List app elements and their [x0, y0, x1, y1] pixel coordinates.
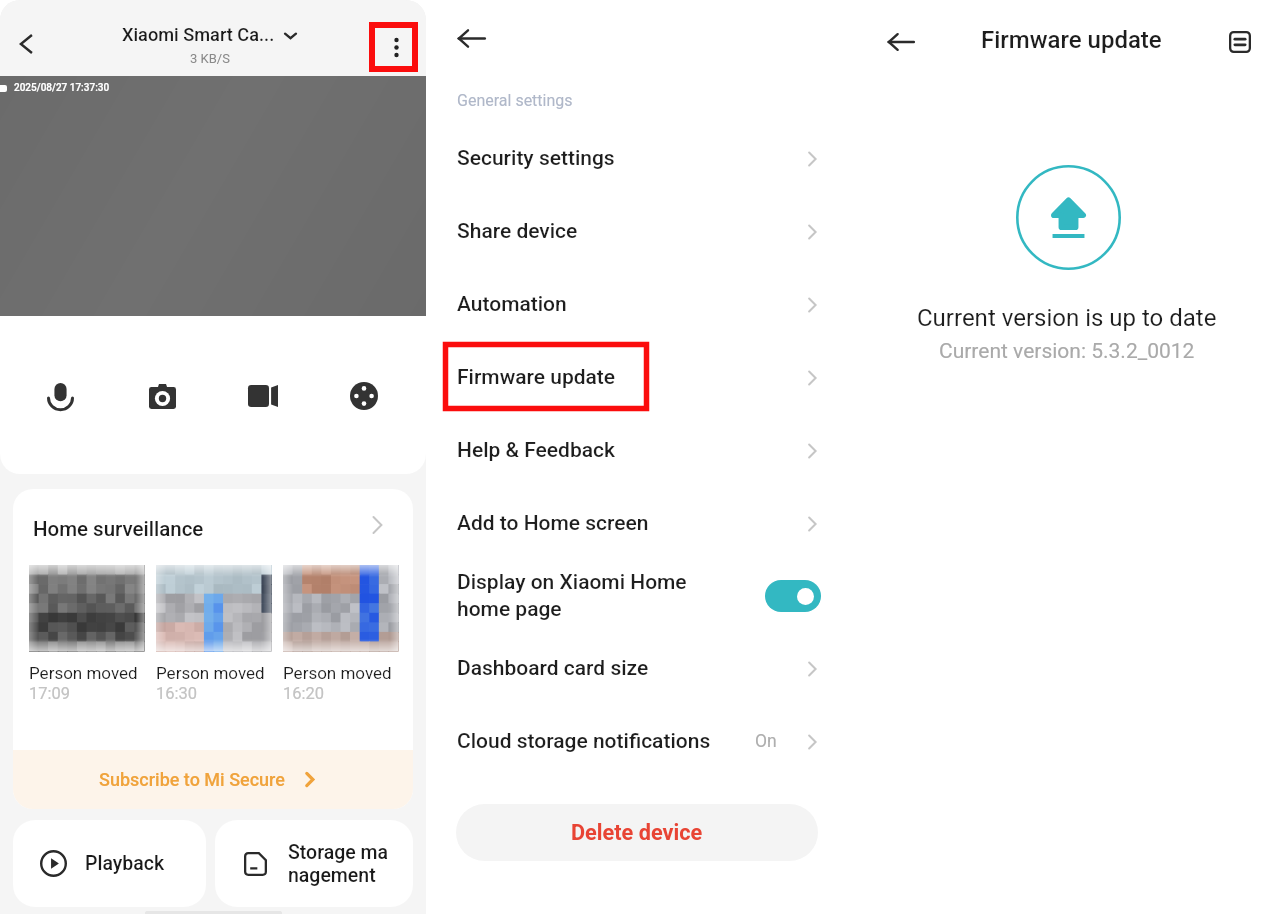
staticText: Current version is up to date: [917, 304, 1217, 332]
button[interactable]: Update log: [1223, 25, 1257, 59]
button[interactable]: Display on Xiaomi Home home page: [426, 562, 853, 628]
button[interactable]: Back: [449, 16, 493, 60]
staticText: 3 KB/S: [190, 51, 230, 66]
button[interactable]: Home surveillance: [33, 517, 388, 541]
button[interactable]: More: [337, 369, 391, 423]
staticText: Display on Xiaomi Home home page: [457, 570, 687, 621]
button[interactable]: Record video: [236, 369, 290, 423]
staticText: Dashboard card size: [457, 656, 649, 681]
staticText: Playback: [85, 852, 165, 875]
button[interactable]: Person moved: [29, 565, 156, 703]
button[interactable]: Back: [6, 23, 48, 65]
staticText: Person moved: [156, 663, 265, 683]
staticText: Firmware update: [981, 26, 1162, 54]
button[interactable]: Security settings: [426, 125, 853, 191]
button[interactable]: More options: [369, 22, 418, 72]
button[interactable]: Subscribe to Mi Secure: [13, 750, 413, 809]
staticText: Share device: [457, 219, 578, 244]
button[interactable]: Microphone: [33, 371, 87, 425]
staticText: Add to Home screen: [457, 511, 649, 536]
staticText: 2025/08/27 17:37:30: [14, 82, 110, 94]
staticText: Cloud storage notifications: [457, 729, 711, 754]
staticText: Person moved: [283, 663, 392, 683]
staticText: Storage ma nagement: [288, 841, 389, 887]
staticText: 16:30: [156, 684, 198, 703]
staticText: Home surveillance: [33, 517, 204, 541]
staticText: Current version: 5.3.2_0012: [939, 339, 1195, 364]
staticText: Delete device: [571, 820, 703, 845]
button[interactable]: Share device: [426, 198, 853, 264]
button[interactable]: Delete device: [456, 804, 818, 861]
button[interactable]: Person moved: [283, 565, 410, 703]
button[interactable]: Cloud storage notifications: [426, 708, 853, 774]
staticText: Subscribe to Mi Secure: [99, 769, 285, 790]
button[interactable]: Add to Home screen: [426, 490, 853, 556]
button[interactable]: Storage ma nagement: [215, 820, 413, 907]
staticText: General settings: [457, 91, 573, 110]
button[interactable]: Firmware update: [426, 344, 853, 410]
staticText: Automation: [457, 292, 567, 317]
staticText: Xiaomi Smart Ca...: [122, 24, 275, 45]
staticText: 16:20: [283, 684, 325, 703]
staticText: Firmware update: [457, 365, 616, 390]
staticText: 17:09: [29, 684, 71, 703]
button[interactable]: Help & Feedback: [426, 417, 853, 483]
button[interactable]: Person moved: [156, 565, 283, 703]
staticText: Security settings: [457, 146, 615, 171]
button[interactable]: Dashboard card size: [426, 635, 853, 701]
staticText: Help & Feedback: [457, 438, 615, 463]
button[interactable]: Automation: [426, 271, 853, 337]
staticText: On: [755, 731, 777, 752]
staticText: Person moved: [29, 663, 138, 683]
button[interactable]: Back: [879, 20, 923, 64]
button[interactable]: Screenshot: [135, 369, 189, 423]
button[interactable]: Playback: [13, 820, 206, 907]
